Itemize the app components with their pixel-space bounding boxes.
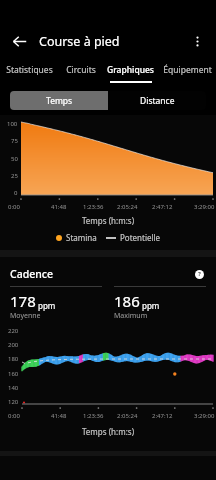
- staticText: Temps: [46, 95, 73, 107]
- staticText: 120: [8, 398, 19, 406]
- staticText: Circuits: [66, 64, 96, 76]
- staticText: ppm: [142, 300, 160, 311]
- staticText: Équipement: [163, 64, 212, 76]
- staticText: 2:47:12: [152, 412, 173, 420]
- staticText: 75: [11, 137, 18, 145]
- staticText: 2:05:24: [117, 203, 138, 211]
- staticText: 2:47:12: [152, 203, 173, 211]
- staticText: Moyenne: [10, 311, 41, 321]
- staticText: ?: [198, 270, 201, 278]
- staticText: 41:48: [51, 203, 67, 211]
- staticText: Cadence: [10, 267, 53, 281]
- staticText: 200: [8, 341, 19, 349]
- staticText: Temps (h:m:s): [0, 215, 216, 226]
- staticText: 50: [11, 155, 18, 163]
- button[interactable]: Back: [0, 22, 38, 60]
- staticText: Temps (h:m:s): [0, 426, 216, 437]
- button[interactable]: Graphiques: [102, 60, 158, 86]
- staticText: 186: [114, 291, 140, 311]
- staticText: 100: [7, 120, 18, 128]
- button[interactable]: Temps: [10, 91, 108, 110]
- staticText: 3:29:00: [194, 412, 215, 420]
- staticText: 25: [11, 172, 18, 180]
- staticText: Maximum: [114, 311, 148, 321]
- staticText: ppm: [38, 300, 56, 311]
- staticText: 178: [10, 291, 36, 311]
- button[interactable]: Équipement: [158, 60, 216, 86]
- staticText: 0:00: [8, 203, 20, 211]
- staticText: Graphiques: [107, 64, 154, 76]
- staticText: Statistiques: [6, 64, 53, 76]
- staticText: 0: [14, 189, 18, 197]
- button[interactable]: More options: [178, 22, 216, 60]
- staticText: 0:00: [8, 412, 20, 420]
- staticText: 1:23:36: [83, 203, 104, 211]
- staticText: 140: [8, 384, 19, 392]
- staticText: 3:29:00: [194, 203, 215, 211]
- button[interactable]: Help: [192, 267, 206, 281]
- staticText: 160: [8, 370, 19, 378]
- staticText: Distance: [140, 95, 175, 107]
- button[interactable]: Statistiques: [0, 60, 59, 86]
- staticText: 41:48: [51, 412, 67, 420]
- staticText: 180: [8, 355, 19, 363]
- staticText: Course à pied: [39, 33, 120, 50]
- staticText: 1:23:36: [83, 412, 104, 420]
- staticText: Potentielle: [120, 232, 161, 243]
- button[interactable]: Distance: [108, 91, 206, 110]
- staticText: 220: [8, 327, 19, 335]
- staticText: Stamina: [66, 232, 97, 243]
- button[interactable]: Circuits: [59, 60, 102, 86]
- staticText: 2:05:24: [117, 412, 138, 420]
